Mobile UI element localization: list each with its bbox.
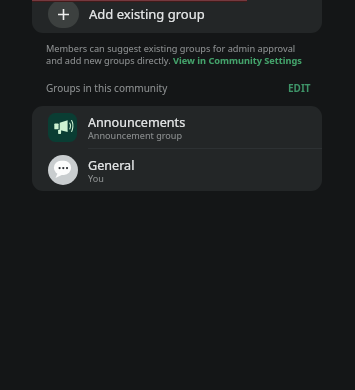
staticText: Groups in this community xyxy=(46,81,168,95)
button[interactable]: Add xyxy=(32,0,322,33)
staticText: General xyxy=(88,157,135,174)
staticText: You xyxy=(88,172,104,184)
button[interactable]: EDIT xyxy=(286,79,311,97)
button[interactable]: General xyxy=(32,149,322,191)
staticText: Add existing group xyxy=(89,5,205,23)
other: Add xyxy=(48,0,79,28)
button[interactable]: Announcements xyxy=(32,106,322,148)
staticText: EDIT xyxy=(288,81,311,95)
staticText: Announcement group xyxy=(88,129,183,141)
staticText: Announcements xyxy=(88,114,186,131)
staticText: Members can suggest existing groups for … xyxy=(46,42,310,66)
